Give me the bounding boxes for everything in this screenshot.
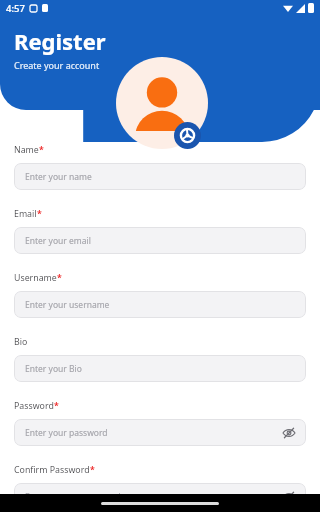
staticText: Password (14, 400, 54, 412)
staticText: Create your account (14, 59, 100, 71)
staticText: Enter your name (25, 171, 92, 183)
button[interactable]: Show password (280, 488, 298, 506)
staticText: Enter your username (25, 299, 110, 311)
button[interactable]: Enter your Bio (14, 355, 306, 382)
button[interactable]: Change photo (174, 122, 201, 149)
button[interactable]: Enter your email (14, 227, 306, 254)
button[interactable]: Enter your password (14, 419, 306, 446)
staticText: Username (14, 272, 57, 284)
staticText: * (57, 272, 62, 284)
staticText: * (37, 208, 42, 220)
staticText: * (90, 464, 95, 476)
button[interactable]: Profile photo (116, 57, 208, 149)
staticText: Register (14, 26, 106, 56)
staticText: Email (14, 208, 37, 220)
staticText: Re-enter your password (25, 491, 121, 503)
staticText: Enter your password (25, 427, 108, 439)
button[interactable]: Show password (280, 424, 298, 442)
staticText: Name (14, 144, 39, 156)
button[interactable]: Enter your name (14, 163, 306, 190)
staticText: Confirm Password (14, 464, 90, 476)
staticText: Bio (14, 336, 28, 348)
staticText: Enter your email (25, 235, 91, 247)
staticText: 4:57 (6, 2, 25, 15)
button[interactable]: Enter your username (14, 291, 306, 318)
button[interactable]: Re-enter your password (14, 483, 306, 510)
staticText: Enter your Bio (25, 363, 82, 375)
staticText: * (39, 144, 44, 156)
staticText: * (54, 400, 59, 412)
